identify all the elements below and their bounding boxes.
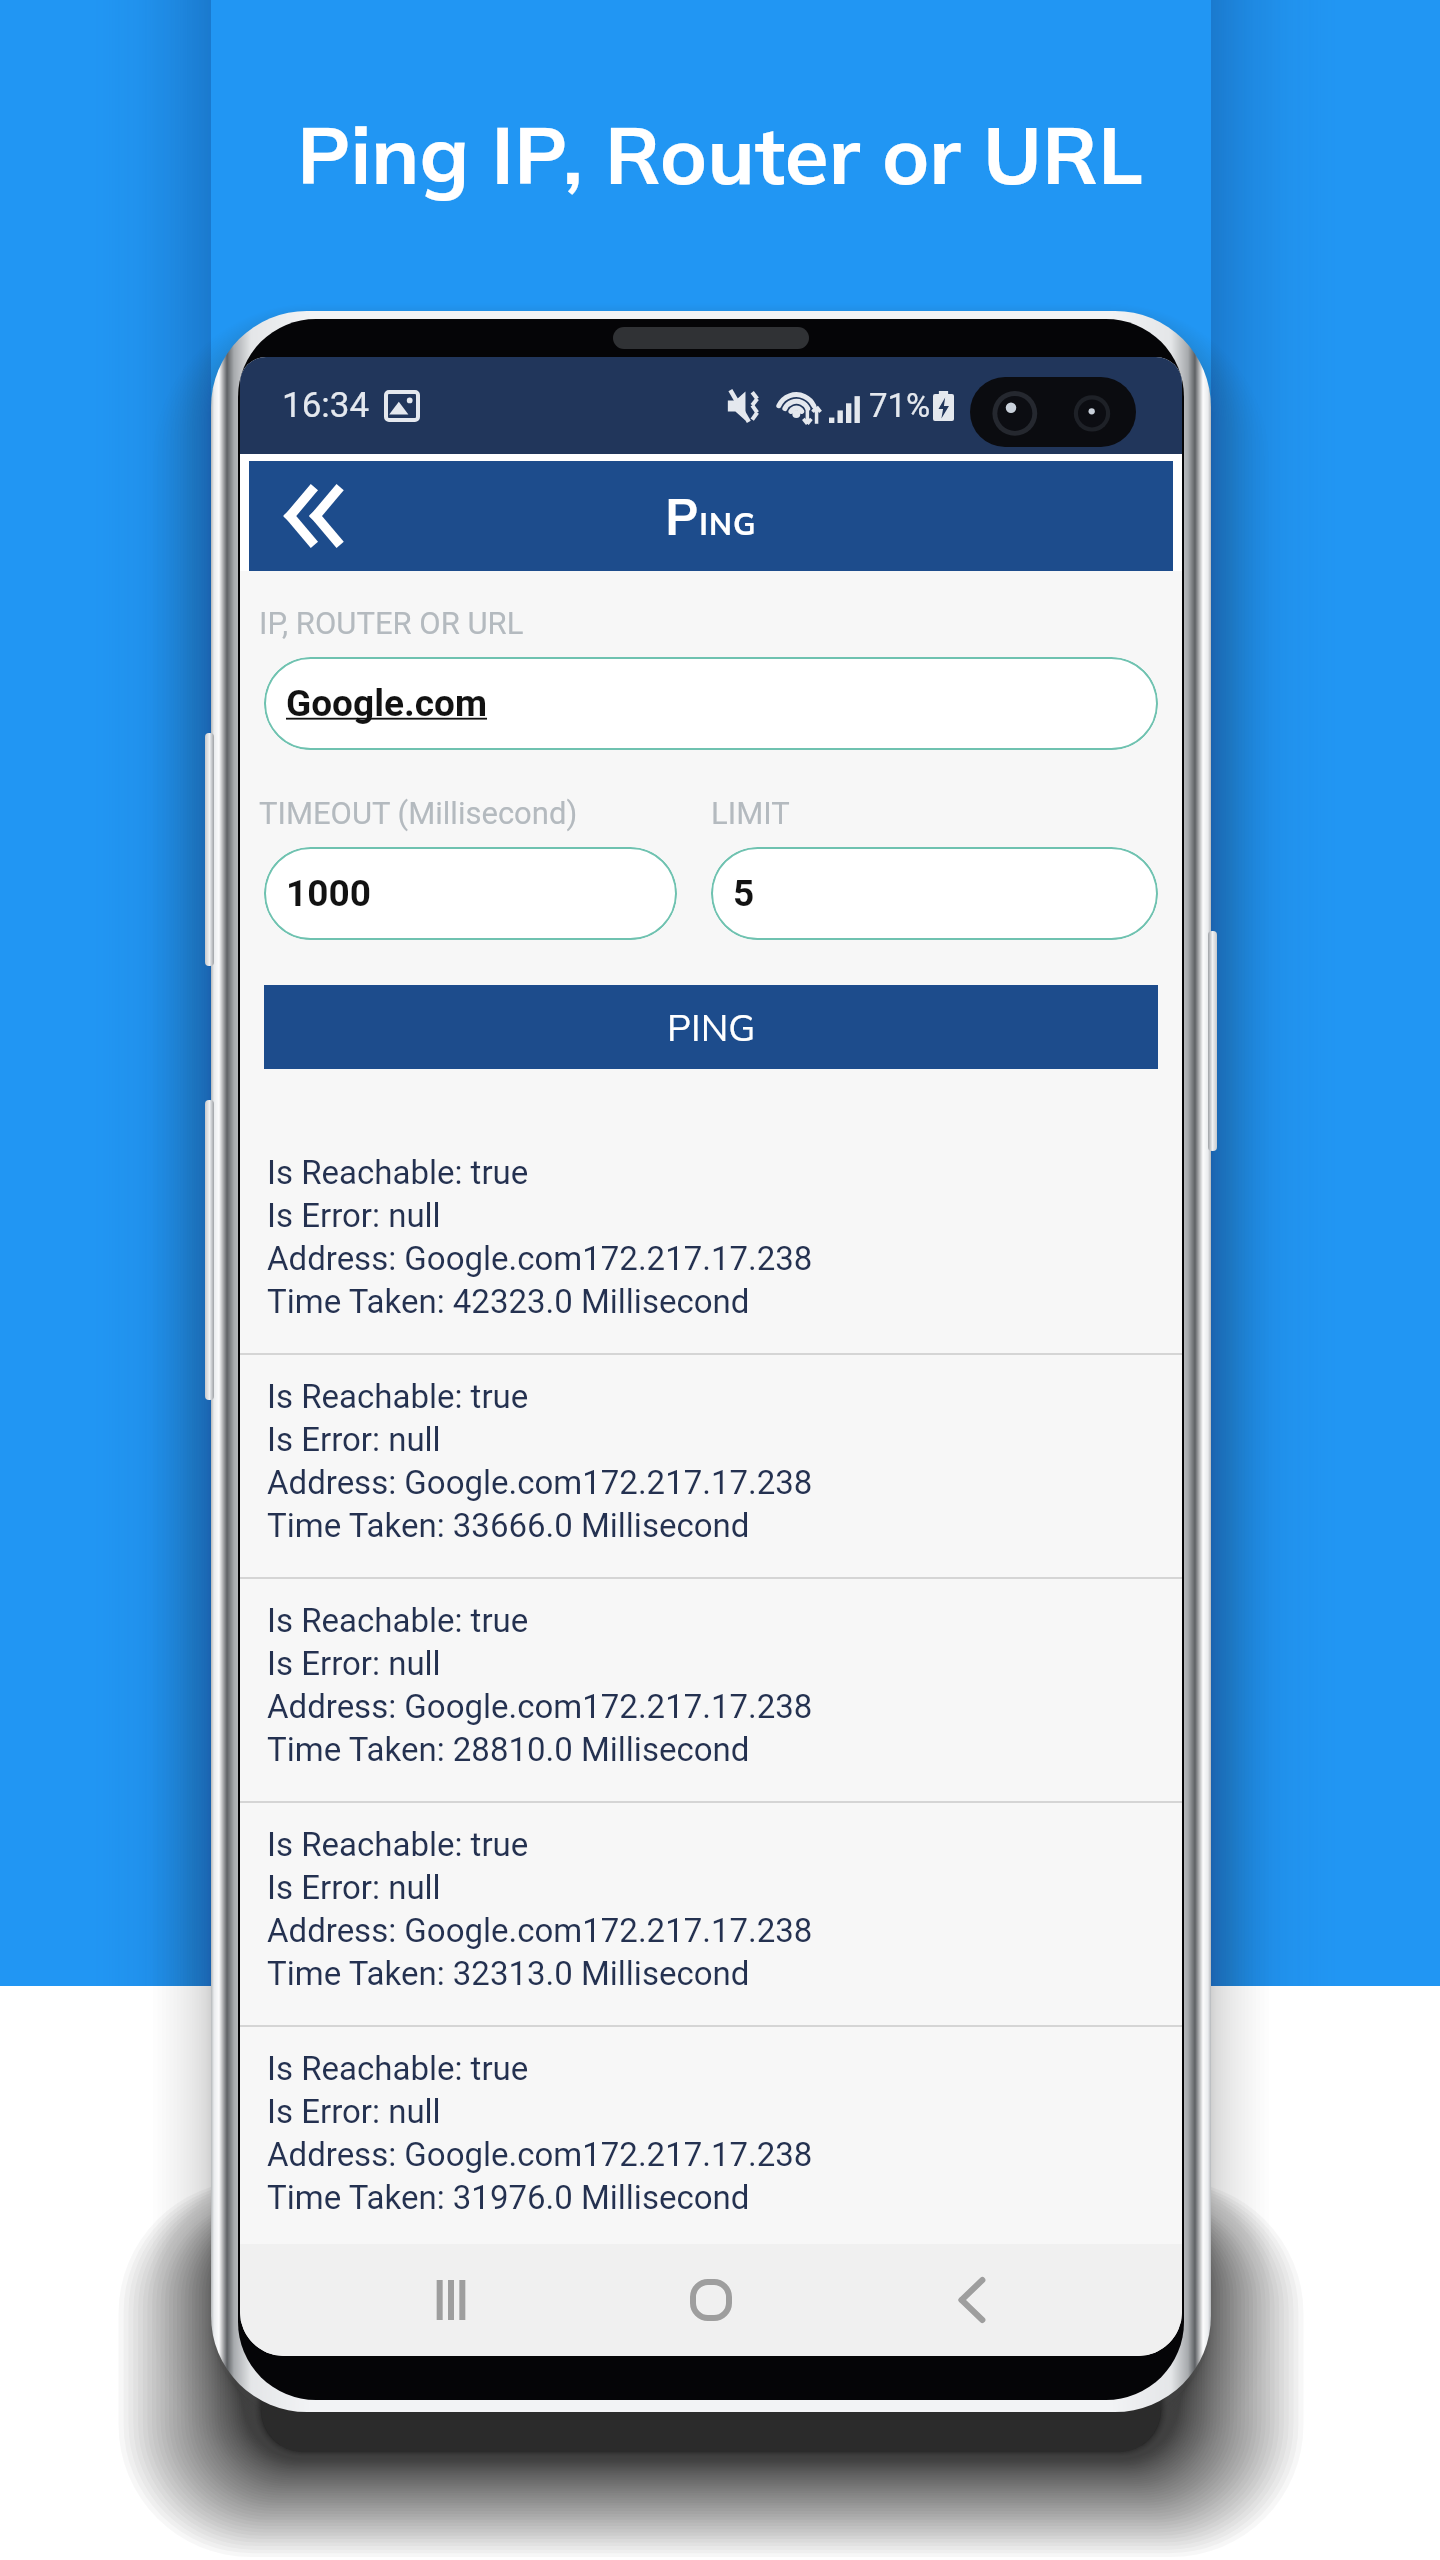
button[interactable]: Is Reachable: true Is Error: null Addres… [240,1803,1182,2025]
staticText: Is Reachable: true Is Error: null Addres… [267,1601,813,1769]
button[interactable]: Google.com [264,657,1158,750]
button[interactable]: Back [922,2250,1022,2350]
staticText: IP, ROUTER OR URL [259,605,524,641]
button[interactable]: Is Reachable: true Is Error: null Addres… [240,1579,1182,1801]
staticText: 1000 [286,872,371,915]
button[interactable]: Home [661,2250,761,2350]
staticText: Is Reachable: true Is Error: null Addres… [267,2049,813,2217]
button[interactable]: Recent apps [401,2250,501,2350]
staticText: Is Reachable: true Is Error: null Addres… [267,1377,813,1545]
staticText: Google.com [286,682,488,725]
button[interactable]: PING [249,461,1173,571]
button[interactable]: Back [275,478,351,554]
button[interactable]: 1000 [264,847,677,940]
button[interactable]: PING [264,985,1158,1069]
staticText: PING [665,485,757,548]
staticText: 5 [733,872,755,915]
button[interactable]: Is Reachable: true Is Error: null Addres… [240,1355,1182,1577]
staticText: Ping IP, Router or URL [297,104,1143,204]
staticText: Is Reachable: true Is Error: null Addres… [267,1825,813,1993]
button[interactable]: Is Reachable: true Is Error: null Addres… [240,1131,1182,1353]
staticText: Is Reachable: true Is Error: null Addres… [267,1153,813,1321]
staticText: PING [667,1004,756,1050]
staticText: 16:34 [282,385,370,426]
button[interactable]: 5 [711,847,1158,940]
button[interactable]: Is Reachable: true Is Error: null Addres… [240,2027,1182,2244]
staticText: TIMEOUT (Millisecond) [259,795,578,831]
staticText: 71% [869,386,931,425]
staticText: LIMIT [711,795,790,831]
